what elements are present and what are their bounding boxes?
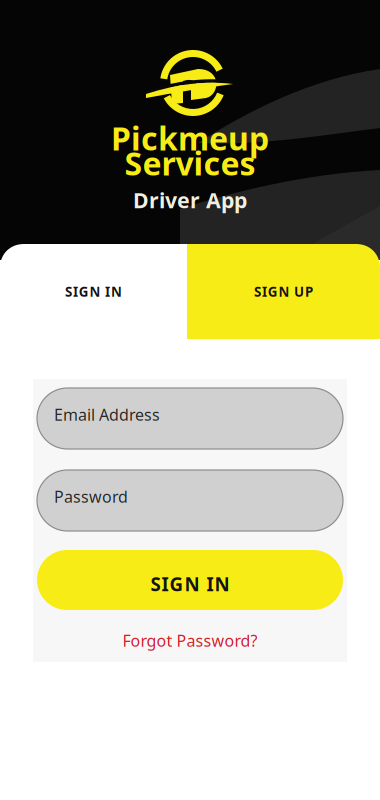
staticText: Pickmeup — [111, 117, 269, 159]
staticText: SIGN UP — [254, 283, 313, 300]
staticText: Driver App — [133, 186, 247, 214]
staticText: Email Address — [54, 404, 160, 425]
button[interactable]: SIGN IN — [37, 550, 343, 610]
button[interactable]: SIGN IN — [0, 244, 187, 339]
button[interactable]: SIGN UP — [187, 244, 380, 339]
staticText: SIGN IN — [65, 283, 122, 300]
staticText: Forgot Password? — [122, 630, 257, 651]
staticText: Password — [54, 486, 128, 507]
staticText: SIGN IN — [150, 572, 229, 596]
staticText: Services — [124, 142, 255, 184]
button[interactable]: Forgot Password? — [122, 630, 257, 651]
